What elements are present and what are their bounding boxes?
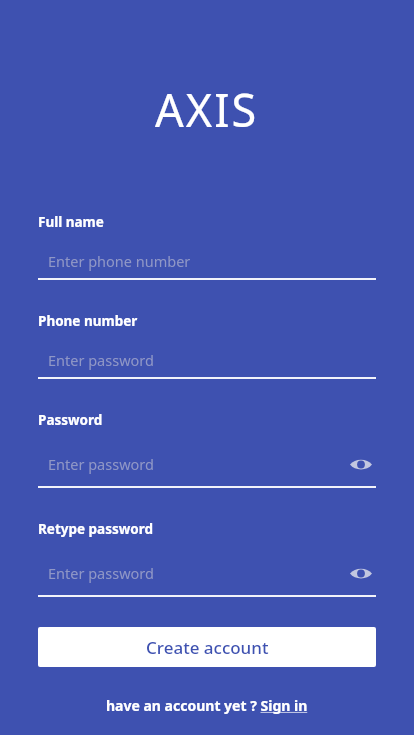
staticText: AXIS [155,79,259,140]
staticText: Enter password [48,454,154,474]
button[interactable]: have an account yet ? Sign in [106,696,308,715]
staticText: Enter password [48,563,154,583]
button[interactable]: Show retyped password [346,558,376,588]
staticText: Enter password [48,350,154,370]
button[interactable]: Create account [38,627,376,667]
staticText: have an account yet ? Sign in [106,696,308,715]
staticText: Enter phone number [48,251,191,271]
staticText: Password [38,411,103,429]
button[interactable]: Show password [346,449,376,479]
staticText: Phone number [38,312,138,330]
staticText: Full name [38,213,104,231]
staticText: Create account [146,636,269,659]
staticText: Retype password [38,520,154,538]
